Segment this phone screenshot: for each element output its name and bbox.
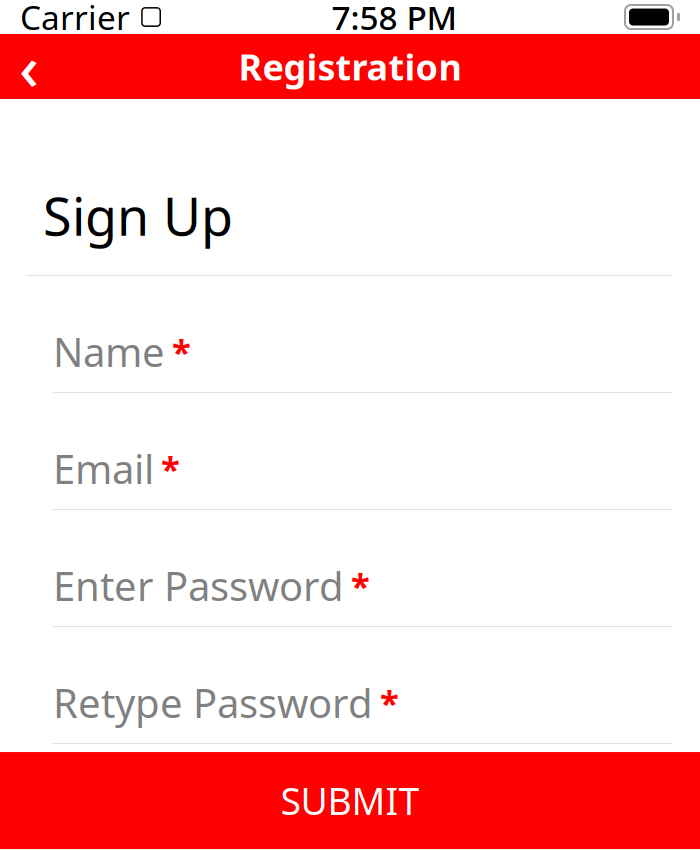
staticText: * [172,328,191,374]
staticText: Retype Password [53,676,373,729]
staticText: Name [53,325,165,378]
staticText: * [161,445,180,491]
button[interactable]: SUBMIT [0,752,700,849]
staticText: Carrier [20,0,130,39]
staticText: Enter Password [53,559,344,612]
staticText: * [380,679,399,725]
staticText: 7:58 PM [332,0,458,39]
staticText: Email [53,442,154,495]
staticText: Registration [238,43,461,90]
staticText: SUBMIT [280,776,419,825]
staticText: ‹ [19,26,39,107]
staticText: Sign Up [43,181,233,250]
staticText: * [351,562,370,608]
button[interactable]: Back [0,34,58,99]
